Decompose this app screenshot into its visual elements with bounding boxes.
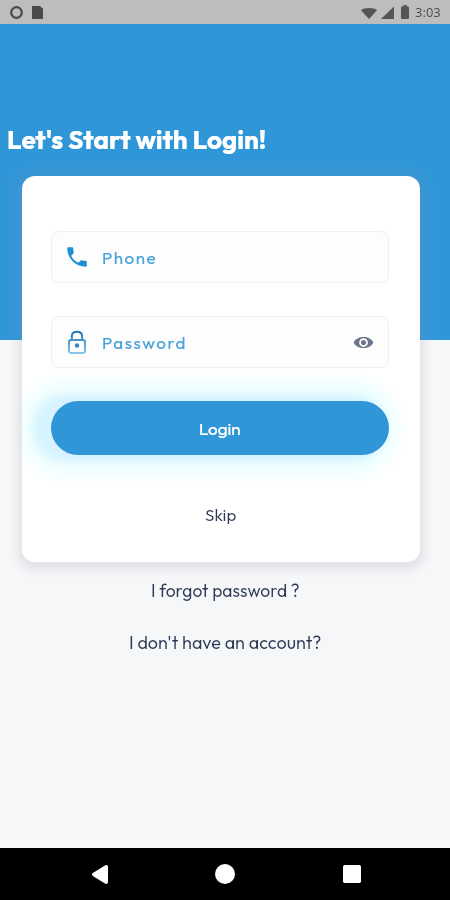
button[interactable]: Show password bbox=[349, 328, 377, 356]
staticText: Let's Start with Login! bbox=[7, 123, 267, 156]
staticText: Password bbox=[102, 332, 187, 353]
button[interactable]: I forgot password ? bbox=[0, 576, 450, 604]
button[interactable]: Password bbox=[51, 316, 389, 368]
button[interactable]: Recent apps bbox=[327, 848, 377, 900]
button[interactable]: Home bbox=[200, 848, 250, 900]
button[interactable]: Skip bbox=[22, 496, 420, 532]
button[interactable]: I don't have an account? bbox=[0, 628, 450, 656]
button[interactable]: Login bbox=[51, 401, 389, 455]
staticText: Skip bbox=[205, 504, 237, 525]
staticText: I forgot password ? bbox=[151, 579, 300, 601]
button[interactable]: Phone bbox=[51, 231, 389, 283]
staticText: Login bbox=[199, 418, 241, 439]
staticText: 3:03 bbox=[415, 3, 441, 21]
staticText: Phone bbox=[102, 247, 158, 268]
button[interactable]: Back bbox=[74, 848, 124, 900]
staticText: I don't have an account? bbox=[129, 631, 322, 654]
